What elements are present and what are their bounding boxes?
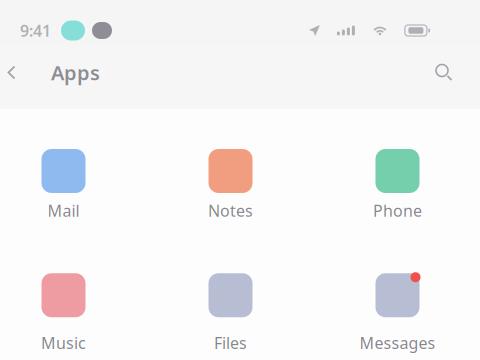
staticText: Mail (47, 200, 79, 221)
staticText: Music (41, 332, 86, 353)
button[interactable]: Back (0, 50, 28, 94)
staticText: Phone (373, 200, 422, 221)
button[interactable]: Notes (147, 149, 314, 221)
staticText: Messages (359, 332, 435, 353)
button[interactable]: Files (147, 273, 314, 353)
button[interactable]: Messages (314, 273, 480, 353)
button[interactable]: Phone (314, 149, 480, 221)
button[interactable]: Music (0, 273, 147, 353)
staticText: Apps (51, 59, 100, 86)
button[interactable]: Search (420, 50, 480, 94)
staticText: 9:41 (20, 20, 51, 41)
staticText: Files (214, 332, 247, 353)
button[interactable]: Mail (0, 149, 147, 221)
staticText: Notes (208, 200, 253, 221)
